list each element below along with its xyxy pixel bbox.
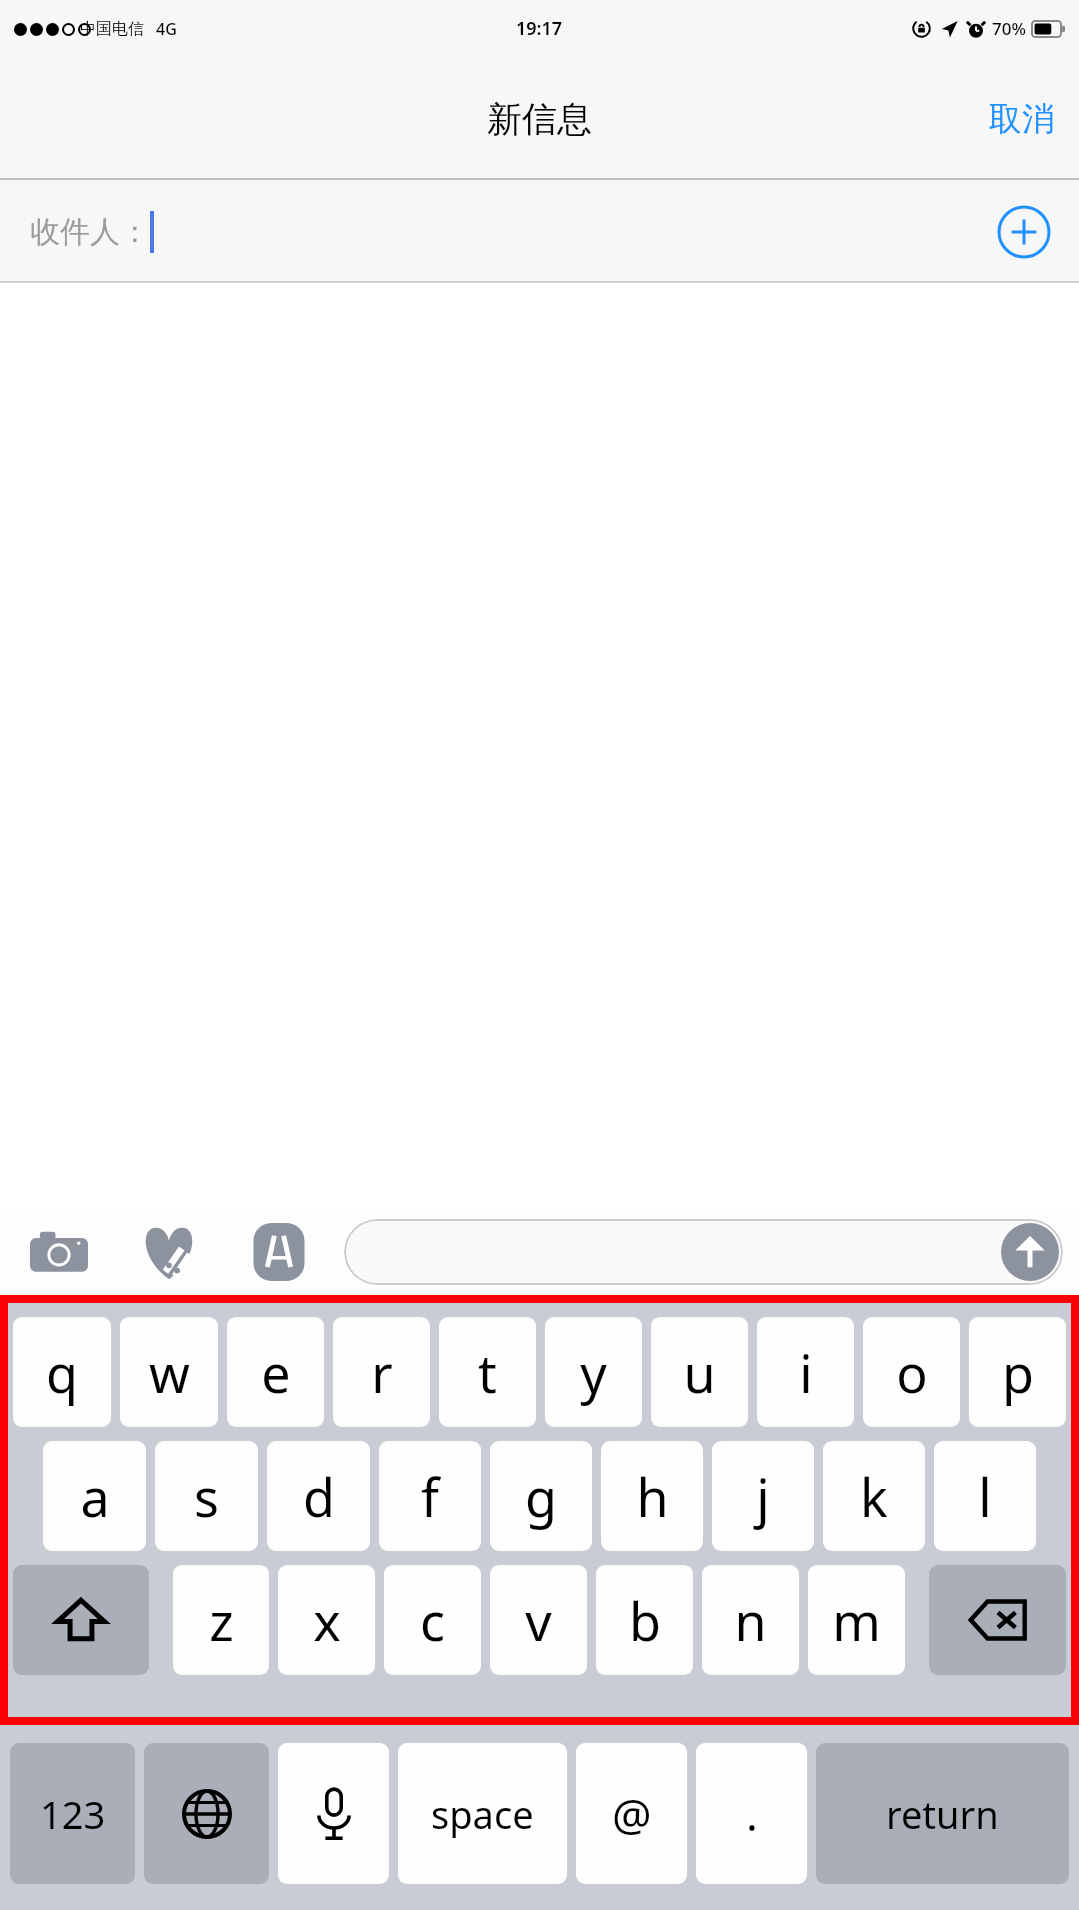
button[interactable]: g	[490, 1441, 592, 1551]
staticText: return	[886, 1788, 999, 1840]
button[interactable]: r	[333, 1317, 430, 1427]
staticText: p	[1002, 1337, 1034, 1408]
staticText: .	[746, 1784, 758, 1844]
staticText: c	[420, 1585, 445, 1656]
button[interactable]: l	[934, 1441, 1036, 1551]
staticText: z	[209, 1585, 234, 1656]
staticText: s	[194, 1461, 219, 1532]
button[interactable]: Send	[1001, 1223, 1059, 1281]
button[interactable]: e	[227, 1317, 324, 1427]
button[interactable]: a	[43, 1441, 146, 1551]
staticText: 19:17	[516, 16, 563, 41]
button[interactable]: u	[651, 1317, 748, 1427]
button[interactable]: z	[173, 1565, 269, 1675]
staticText: @	[612, 1784, 652, 1844]
staticText: k	[860, 1461, 888, 1532]
button[interactable]: m	[808, 1565, 905, 1675]
staticText: 取消	[989, 98, 1055, 140]
staticText: t	[478, 1337, 497, 1408]
button[interactable]: h	[601, 1441, 703, 1551]
button[interactable]: t	[439, 1317, 536, 1427]
staticText: f	[421, 1461, 439, 1532]
staticText: a	[80, 1461, 110, 1532]
staticText: h	[636, 1461, 669, 1532]
button[interactable]: x	[278, 1565, 375, 1675]
staticText: x	[313, 1585, 341, 1656]
staticText: q	[46, 1337, 78, 1408]
button[interactable]: f	[379, 1441, 481, 1551]
staticText: i	[799, 1337, 813, 1408]
button[interactable]: o	[863, 1317, 960, 1427]
staticText: 4G	[156, 18, 177, 40]
staticText: y	[580, 1337, 607, 1408]
button[interactable]: p	[969, 1317, 1066, 1427]
button[interactable]: Backspace	[929, 1565, 1066, 1675]
button[interactable]: .	[696, 1743, 807, 1884]
button[interactable]: d	[267, 1441, 370, 1551]
button[interactable]: 123	[10, 1743, 135, 1884]
button[interactable]: Send	[344, 1219, 1063, 1285]
staticText: g	[525, 1461, 557, 1532]
button[interactable]: c	[384, 1565, 481, 1675]
staticText: space	[431, 1788, 534, 1840]
button[interactable]: Shift	[13, 1565, 149, 1675]
staticText: 70%	[992, 17, 1026, 40]
staticText: 中国电信	[80, 19, 144, 39]
button[interactable]: Change keyboard	[144, 1743, 269, 1884]
staticText: 收件人：	[30, 213, 150, 251]
button[interactable]: q	[13, 1317, 111, 1427]
button[interactable]: y	[545, 1317, 642, 1427]
staticText: n	[734, 1585, 767, 1656]
staticText: r	[371, 1337, 393, 1408]
staticText: j	[756, 1461, 770, 1532]
staticText: 123	[40, 1788, 106, 1840]
button[interactable]: Camera	[22, 1215, 96, 1289]
staticText: w	[149, 1337, 190, 1408]
button[interactable]: k	[823, 1441, 925, 1551]
button[interactable]: w	[120, 1317, 218, 1427]
button[interactable]: Digital Touch	[132, 1215, 206, 1289]
staticText: l	[978, 1461, 992, 1532]
staticText: m	[832, 1585, 881, 1656]
staticText: 新信息	[487, 97, 592, 141]
button[interactable]: App Store	[242, 1215, 316, 1289]
button[interactable]: return	[816, 1743, 1069, 1884]
button[interactable]: i	[757, 1317, 854, 1427]
button[interactable]: 取消	[965, 84, 1079, 154]
button[interactable]: v	[490, 1565, 587, 1675]
button[interactable]: Dictate	[278, 1743, 389, 1884]
staticText: d	[303, 1461, 335, 1532]
staticText: o	[896, 1337, 928, 1408]
button[interactable]: s	[155, 1441, 258, 1551]
button[interactable]: Add contact	[997, 205, 1051, 259]
button[interactable]: j	[712, 1441, 814, 1551]
button[interactable]: @	[576, 1743, 687, 1884]
button[interactable]: space	[398, 1743, 567, 1884]
staticText: v	[525, 1585, 552, 1656]
button[interactable]: b	[596, 1565, 693, 1675]
staticText: e	[261, 1337, 291, 1408]
staticText: b	[629, 1585, 661, 1656]
staticText: u	[683, 1337, 716, 1408]
button[interactable]: n	[702, 1565, 799, 1675]
